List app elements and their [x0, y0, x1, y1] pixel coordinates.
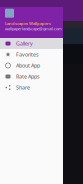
staticText: About App — [16, 62, 40, 69]
staticText: Landscapes Wallpapers — [5, 21, 51, 26]
button[interactable]: About App — [0, 60, 63, 71]
staticText: wallpaperlandscape@gmail.com — [5, 26, 62, 31]
button[interactable]: Gallery — [0, 38, 63, 49]
staticText: Rate Apps — [16, 73, 40, 80]
staticText: Share — [16, 84, 30, 91]
staticText: Favorites — [16, 51, 39, 58]
staticText: Gallery — [16, 40, 33, 47]
button[interactable]: Favorites — [0, 49, 63, 60]
button[interactable]: Rate Apps — [0, 71, 63, 82]
button[interactable]: Share — [0, 82, 63, 93]
